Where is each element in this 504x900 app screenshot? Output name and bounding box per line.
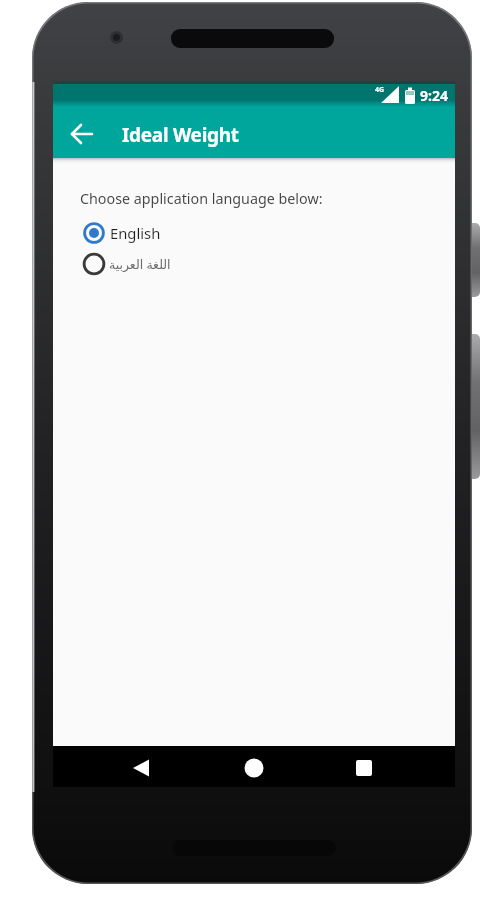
button[interactable] bbox=[65, 117, 99, 151]
button[interactable]: اللغة العربية bbox=[83, 251, 263, 277]
staticText: English bbox=[110, 223, 161, 243]
staticText: 9:24 bbox=[420, 86, 448, 105]
staticText: اللغة العربية bbox=[109, 256, 171, 273]
staticText: 4G bbox=[375, 85, 385, 95]
button[interactable] bbox=[345, 751, 383, 785]
staticText: Ideal Weight bbox=[122, 122, 239, 148]
button[interactable] bbox=[235, 751, 273, 785]
button[interactable] bbox=[123, 751, 161, 785]
staticText: Choose application language below: bbox=[80, 189, 323, 208]
button[interactable]: English bbox=[83, 220, 263, 246]
